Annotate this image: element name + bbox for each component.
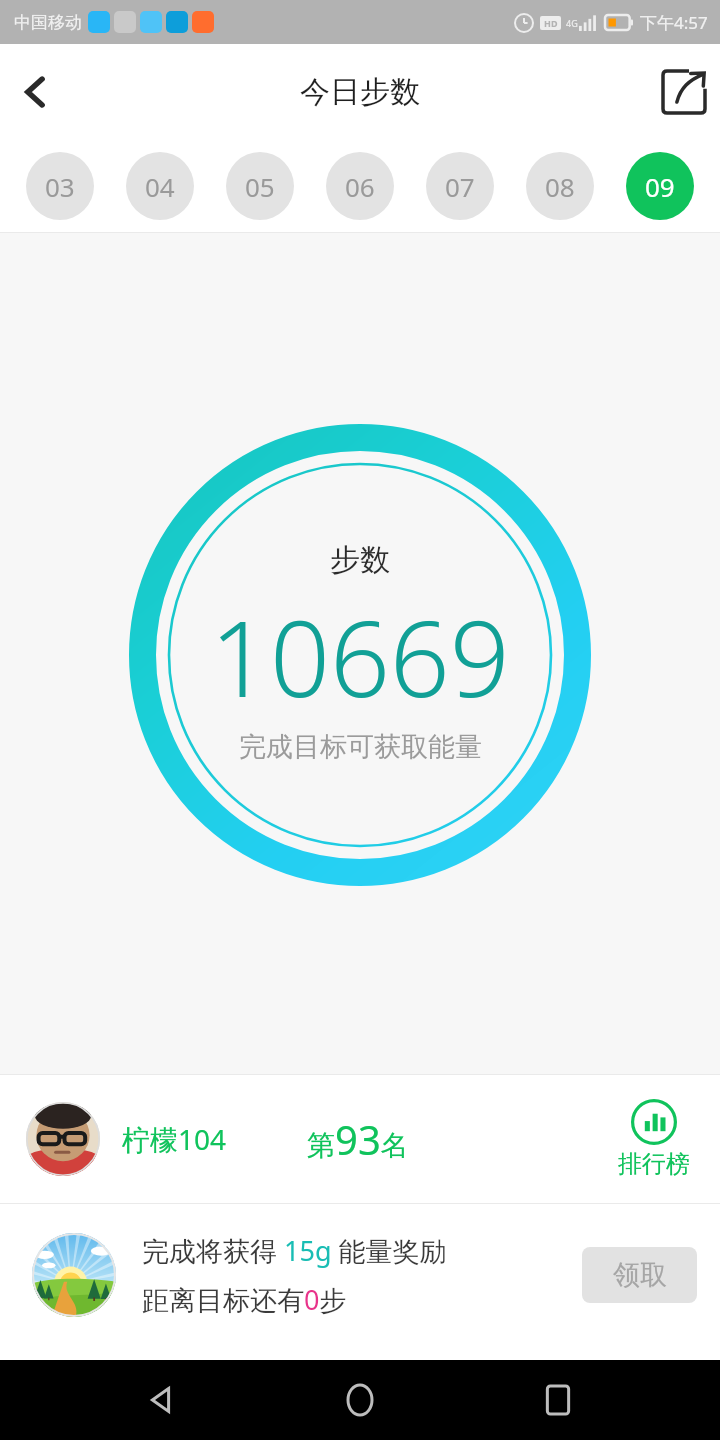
staticText: 10669 [210,585,510,728]
staticText: 排行榜 [618,1149,690,1179]
button[interactable]: 05 [226,152,294,220]
staticText: 步数 [330,541,390,579]
button[interactable]: 09 [626,152,694,220]
staticText: 今日步数 [300,73,420,111]
staticText: 下午4:57 [640,11,708,34]
staticText: 距离目标还有0步 [142,1281,347,1318]
staticText: 07 [445,169,475,204]
button[interactable]: 领取 [582,1247,697,1303]
button[interactable]: 柠檬104 [0,1075,720,1203]
staticText: 06 [345,169,375,204]
staticText: 柠檬104 [122,1120,227,1158]
staticText: 08 [545,169,575,204]
staticText: 中国移动 [14,12,82,33]
staticText: 4G [566,17,578,29]
button[interactable]: Recent apps [522,1364,594,1436]
button[interactable]: Back [0,56,72,128]
staticText: 领取 [613,1258,667,1292]
button[interactable]: Back [126,1364,198,1436]
button[interactable]: Share [648,56,720,128]
staticText: 完成将获得 15g 能量奖励 [142,1232,447,1269]
staticText: 05 [245,169,275,204]
button[interactable]: 03 [26,152,94,220]
staticText: 完成目标可获取能量 [239,730,482,764]
staticText: 第93名 [307,1112,409,1166]
button[interactable]: 08 [526,152,594,220]
button[interactable]: 04 [126,152,194,220]
button[interactable]: 排行榜 [612,1093,696,1185]
staticText: 04 [145,169,175,204]
staticText: HD [544,17,558,29]
staticText: 03 [45,169,75,204]
staticText: 09 [645,169,675,204]
button[interactable]: Home [324,1364,396,1436]
button[interactable]: 06 [326,152,394,220]
button[interactable]: 07 [426,152,494,220]
